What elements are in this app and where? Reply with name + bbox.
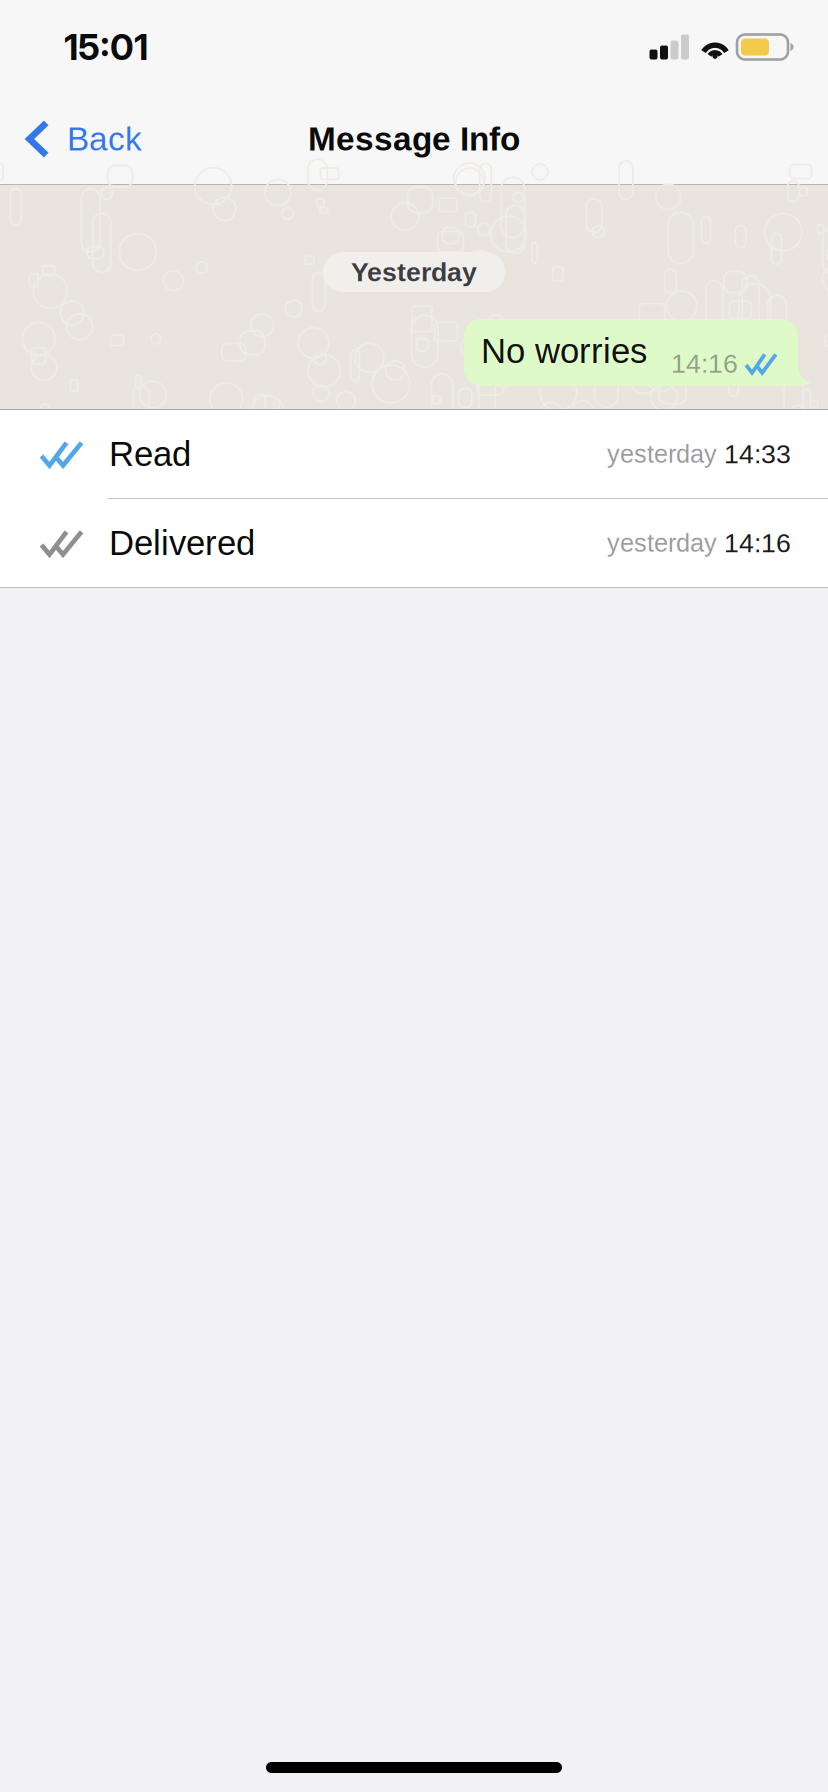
staticText: 14:33 xyxy=(724,439,791,469)
button[interactable]: Delivered xyxy=(0,499,828,587)
button[interactable]: Back xyxy=(0,107,160,170)
staticText: Read xyxy=(109,435,191,473)
staticText: 15:01 xyxy=(64,25,148,69)
staticText: yesterday xyxy=(607,529,717,557)
staticText: No worries xyxy=(481,332,647,370)
staticText: yesterday xyxy=(607,440,717,468)
staticText: Back xyxy=(67,120,142,158)
staticText: Yesterday xyxy=(351,257,477,287)
staticText: 14:16 xyxy=(724,528,791,558)
button[interactable]: Read xyxy=(0,410,828,498)
staticText: Delivered xyxy=(109,524,255,562)
staticText: Message Info xyxy=(308,120,520,158)
staticText: 14:16 xyxy=(671,349,738,378)
